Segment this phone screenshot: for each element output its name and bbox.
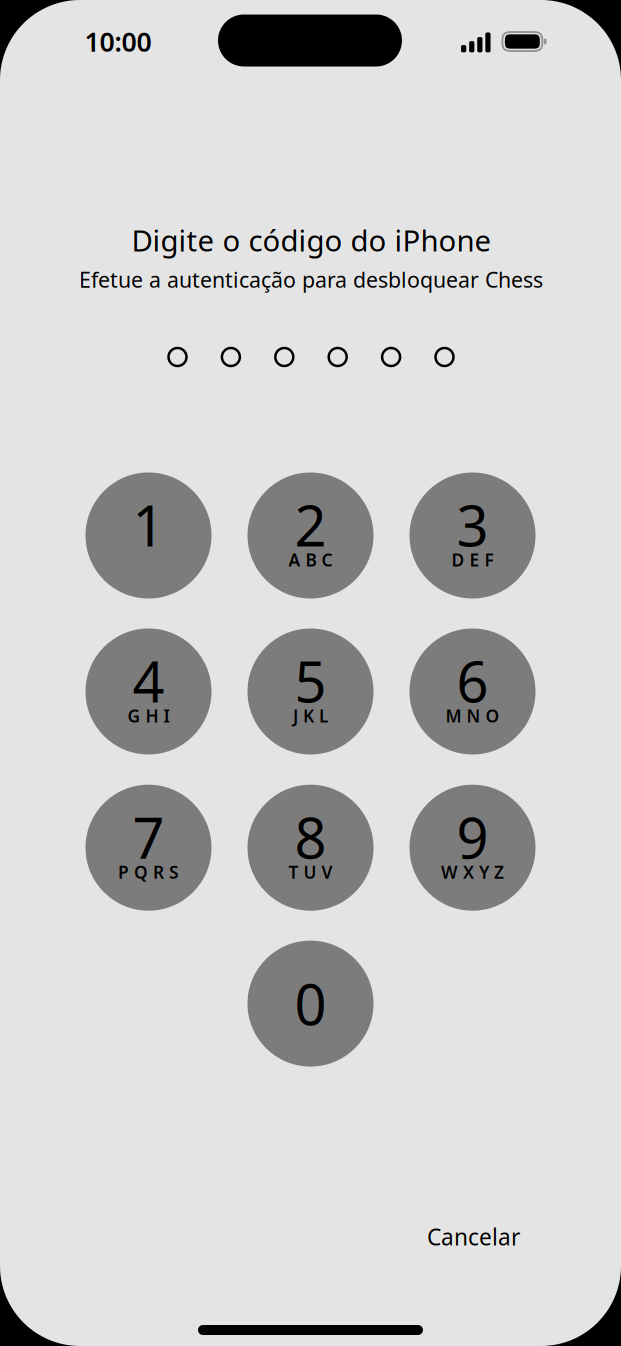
staticText: 7 (132, 800, 164, 874)
staticText: 9 (456, 800, 488, 874)
staticText: M N O (445, 704, 499, 727)
staticText: 10:00 (84, 24, 151, 59)
staticText: G H I (127, 704, 169, 727)
button[interactable]: 4 (85, 628, 211, 754)
staticText: W X Y Z (441, 860, 504, 883)
staticText: 8 (294, 800, 326, 874)
staticText: 1 (132, 488, 164, 562)
button[interactable]: 9 (409, 785, 535, 911)
button[interactable]: 2 (247, 472, 373, 598)
staticText: 0 (294, 966, 326, 1041)
button[interactable]: 8 (247, 785, 373, 911)
button[interactable]: 1 (85, 472, 211, 598)
button[interactable]: 7 (85, 785, 211, 911)
staticText: 6 (456, 644, 488, 718)
staticText: T U V (288, 860, 332, 883)
staticText: Digite o código do iPhone (131, 220, 491, 259)
staticText: Cancelar (427, 1222, 520, 1252)
staticText: 3 (456, 488, 488, 562)
staticText: D E F (451, 548, 493, 571)
staticText: 4 (132, 644, 164, 718)
staticText: J K L (293, 704, 328, 727)
staticText: 2 (294, 488, 326, 562)
button[interactable]: 5 (247, 628, 373, 754)
staticText: 5 (294, 644, 326, 718)
staticText: P Q R S (118, 860, 179, 883)
button[interactable]: 6 (409, 628, 535, 754)
button[interactable]: 0 (247, 941, 373, 1067)
staticText: Efetue a autenticação para desbloquear C… (79, 265, 543, 294)
button[interactable]: Cancelar (408, 1215, 538, 1259)
staticText: A B C (288, 548, 332, 571)
button[interactable]: 3 (409, 472, 535, 598)
